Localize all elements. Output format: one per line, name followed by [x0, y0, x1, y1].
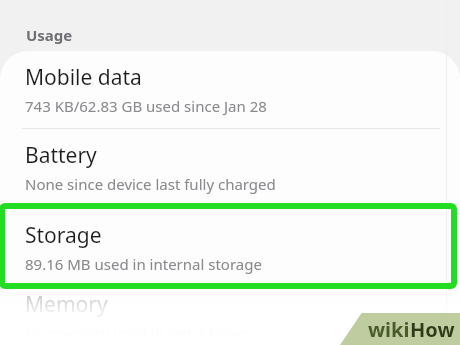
- staticText: Battery: [25, 141, 97, 170]
- button[interactable]: Storage: [0, 207, 460, 287]
- staticText: wiki: [368, 316, 410, 343]
- other: Storage highlighted: [0, 0, 460, 345]
- button[interactable]: Battery: [0, 129, 460, 206]
- staticText: Memory: [25, 290, 108, 319]
- staticText: 89.16 MB used in internal storage: [25, 254, 262, 274]
- staticText: How: [410, 316, 455, 343]
- button[interactable]: Mobile data: [0, 51, 460, 128]
- staticText: Storage: [25, 221, 102, 250]
- staticText: 743 KB/62.83 GB used since Jan 28: [25, 96, 267, 116]
- button[interactable]: Memory: [0, 287, 460, 345]
- staticText: Mobile data: [25, 63, 142, 92]
- staticText: None since device last fully charged: [25, 174, 276, 194]
- staticText: Usage: [26, 25, 73, 45]
